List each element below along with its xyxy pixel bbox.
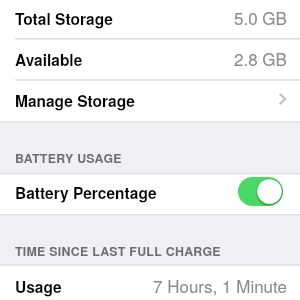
staticText: 7 Hours, 1 Minute bbox=[153, 273, 287, 297]
staticText: BATTERY USAGE bbox=[15, 149, 122, 167]
button[interactable]: Battery Percentage switch, on bbox=[238, 177, 283, 206]
staticText: Available bbox=[15, 49, 83, 71]
staticText: Battery Percentage bbox=[15, 182, 157, 204]
button[interactable]: Battery Percentage bbox=[0, 174, 300, 215]
other: Open Manage Storage bbox=[279, 93, 286, 105]
button[interactable]: Total Storage bbox=[0, 0, 300, 39]
button[interactable]: Available bbox=[0, 39, 300, 80]
staticText: Manage Storage bbox=[15, 90, 135, 112]
staticText: 5.0 GB bbox=[234, 5, 287, 29]
staticText: TIME SINCE LAST FULL CHARGE bbox=[15, 242, 221, 260]
staticText: Total Storage bbox=[15, 8, 113, 30]
button[interactable]: Usage bbox=[0, 266, 300, 300]
button[interactable]: Manage Storage bbox=[0, 80, 300, 122]
staticText: Usage bbox=[15, 276, 62, 298]
staticText: 2.8 GB bbox=[234, 46, 287, 70]
